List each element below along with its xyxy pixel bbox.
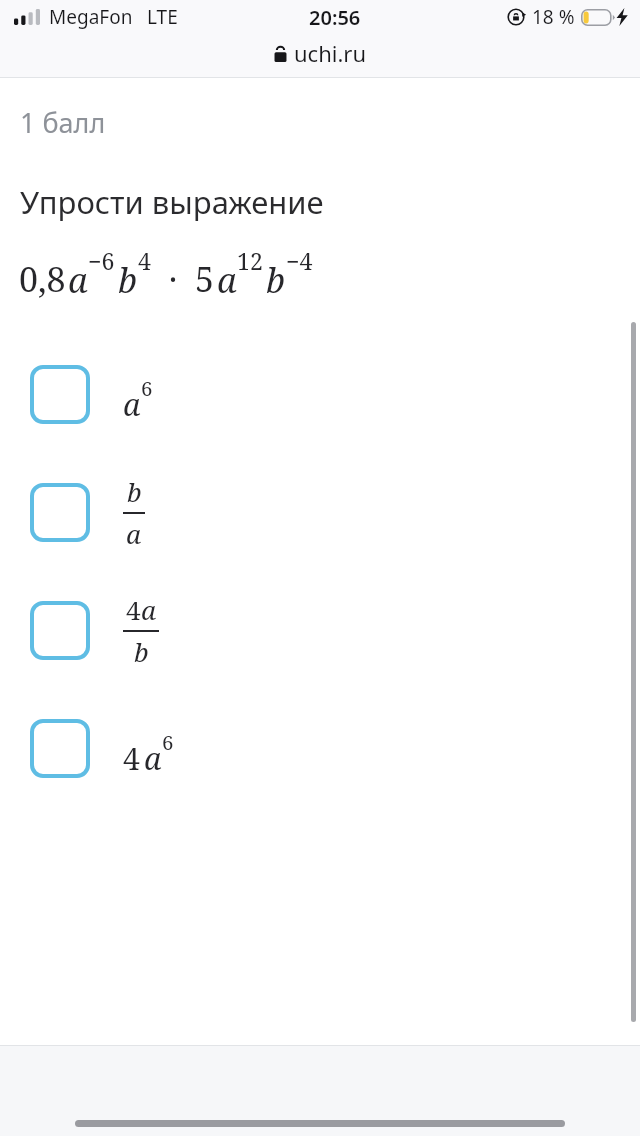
staticText: 4 (123, 738, 140, 779)
staticText: a (141, 592, 157, 627)
staticText: · (151, 256, 195, 302)
staticText: b (118, 257, 138, 303)
staticText: 18 % (532, 4, 575, 30)
staticText: MegaFon (49, 4, 133, 30)
other: Select answer (30, 365, 90, 424)
staticText: 4 (138, 245, 151, 276)
other: Select answer (30, 719, 90, 778)
staticText: a (68, 257, 88, 303)
other: Select answer (30, 601, 90, 660)
staticText: b (266, 257, 286, 303)
staticText: a (123, 384, 141, 425)
staticText: a (217, 257, 237, 303)
staticText: 6 (162, 728, 174, 756)
staticText: uchi.ru (294, 38, 367, 68)
staticText: 4 (126, 592, 141, 627)
staticText: 12 (237, 245, 263, 276)
staticText: LTE (147, 4, 178, 30)
staticText: −4 (286, 245, 313, 276)
button[interactable]: Select answer (0, 571, 640, 689)
button[interactable]: Select answer (0, 335, 640, 453)
staticText: 20:56 (309, 4, 361, 31)
staticText: −6 (88, 245, 115, 276)
other: Select answer (30, 483, 90, 542)
staticText: 5 (195, 256, 215, 302)
staticText: b (127, 474, 142, 509)
staticText: Упрости выражение (20, 181, 324, 223)
staticText: 0,8 (19, 256, 66, 302)
button[interactable]: Select answer (0, 689, 640, 807)
staticText: 6 (141, 374, 153, 402)
button[interactable]: Select answer (0, 453, 640, 571)
staticText: 1 балл (20, 104, 106, 141)
staticText: b (134, 634, 149, 669)
staticText: a (144, 738, 162, 779)
staticText: a (126, 516, 142, 551)
